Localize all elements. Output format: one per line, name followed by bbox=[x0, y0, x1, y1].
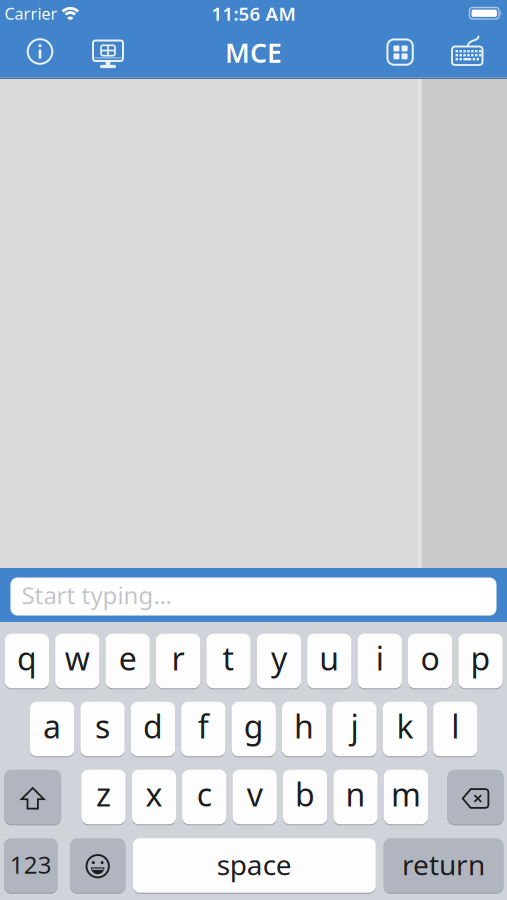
staticText: h bbox=[294, 705, 314, 747]
staticText: Carrier bbox=[4, 3, 57, 24]
button[interactable]: z bbox=[81, 769, 126, 825]
button[interactable]: p bbox=[458, 633, 503, 689]
button[interactable]: s bbox=[80, 701, 125, 757]
button[interactable]: k bbox=[383, 701, 427, 757]
button[interactable]: y bbox=[257, 633, 301, 689]
staticText: d bbox=[143, 705, 163, 747]
button[interactable]: Displays bbox=[91, 39, 125, 69]
button[interactable]: Emoji bbox=[70, 837, 125, 894]
button[interactable]: Delete bbox=[447, 769, 504, 825]
staticText: q bbox=[17, 637, 37, 679]
button[interactable]: v bbox=[232, 769, 277, 825]
button[interactable]: i bbox=[358, 633, 402, 689]
button[interactable]: Info bbox=[26, 37, 54, 65]
staticText: z bbox=[96, 773, 111, 815]
button[interactable]: Start typing... bbox=[10, 577, 496, 615]
button[interactable]: x bbox=[132, 769, 176, 825]
button[interactable]: Scroll area bbox=[418, 79, 507, 568]
staticText: v bbox=[247, 773, 263, 815]
button[interactable]: Shift bbox=[4, 769, 61, 825]
staticText: e bbox=[119, 637, 137, 679]
button[interactable]: q bbox=[5, 633, 49, 689]
button[interactable]: Apps bbox=[386, 38, 414, 66]
staticText: o bbox=[421, 637, 440, 679]
staticText: t bbox=[222, 637, 234, 679]
staticText: space bbox=[217, 846, 292, 883]
button[interactable]: c bbox=[182, 769, 226, 825]
button[interactable]: 123 bbox=[4, 837, 58, 894]
staticText: i bbox=[376, 637, 384, 679]
button[interactable]: g bbox=[231, 701, 276, 757]
button[interactable]: a bbox=[30, 701, 74, 757]
staticText: MCE bbox=[225, 35, 282, 70]
staticText: s bbox=[95, 705, 110, 747]
staticText: f bbox=[198, 705, 209, 747]
staticText: g bbox=[244, 705, 264, 747]
staticText: r bbox=[172, 637, 185, 679]
staticText: y bbox=[271, 637, 287, 679]
button[interactable]: return bbox=[384, 837, 503, 894]
staticText: n bbox=[345, 773, 365, 815]
staticText: b bbox=[295, 773, 315, 815]
button[interactable]: u bbox=[307, 633, 351, 689]
button[interactable]: d bbox=[131, 701, 175, 757]
button[interactable]: t bbox=[206, 633, 251, 689]
button[interactable]: space bbox=[133, 837, 376, 894]
button[interactable]: b bbox=[283, 769, 327, 825]
button[interactable]: n bbox=[333, 769, 378, 825]
button[interactable]: w bbox=[55, 633, 99, 689]
button[interactable]: j bbox=[332, 701, 377, 757]
staticText: j bbox=[350, 705, 358, 747]
staticText: u bbox=[319, 637, 339, 679]
staticText: w bbox=[65, 637, 90, 679]
staticText: m bbox=[391, 773, 421, 815]
staticText: Start typing... bbox=[21, 579, 171, 611]
staticText: x bbox=[145, 773, 162, 815]
staticText: p bbox=[470, 637, 490, 679]
button[interactable]: f bbox=[181, 701, 225, 757]
button[interactable]: e bbox=[106, 633, 150, 689]
staticText: k bbox=[396, 705, 413, 747]
button[interactable]: r bbox=[156, 633, 200, 689]
button[interactable]: o bbox=[408, 633, 452, 689]
button[interactable]: h bbox=[282, 701, 326, 757]
button[interactable]: m bbox=[384, 769, 428, 825]
staticText: return bbox=[402, 846, 485, 883]
staticText: 123 bbox=[10, 849, 52, 880]
staticText: l bbox=[451, 705, 459, 747]
staticText: c bbox=[197, 773, 212, 815]
staticText: a bbox=[43, 705, 61, 747]
staticText: 11:56 AM bbox=[211, 1, 295, 26]
button[interactable]: Keyboard bbox=[450, 34, 484, 66]
button[interactable]: l bbox=[433, 701, 477, 757]
